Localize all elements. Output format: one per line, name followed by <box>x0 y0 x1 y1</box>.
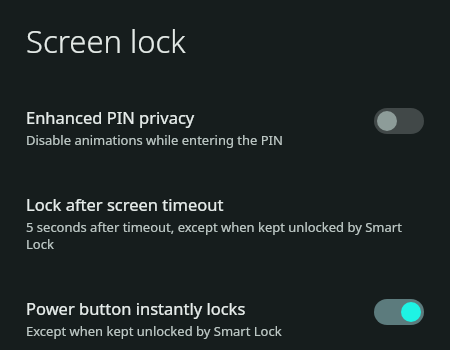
staticText: 5 seconds after timeout, except when kep… <box>26 218 424 253</box>
button[interactable]: Power button instantly locks <box>0 289 450 348</box>
button[interactable]: Switch off <box>374 108 424 134</box>
button[interactable]: Switch on <box>374 299 424 325</box>
staticText: Enhanced PIN privacy <box>26 106 195 128</box>
button[interactable]: Lock after screen timeout <box>0 185 450 261</box>
staticText: Power button instantly locks <box>26 297 246 319</box>
staticText: Screen lock <box>26 20 186 62</box>
staticText: Disable animations while entering the PI… <box>26 131 283 149</box>
staticText: Lock after screen timeout <box>26 193 224 215</box>
button[interactable]: Enhanced PIN privacy <box>0 98 450 157</box>
staticText: Except when kept unlocked by Smart Lock <box>26 322 282 340</box>
